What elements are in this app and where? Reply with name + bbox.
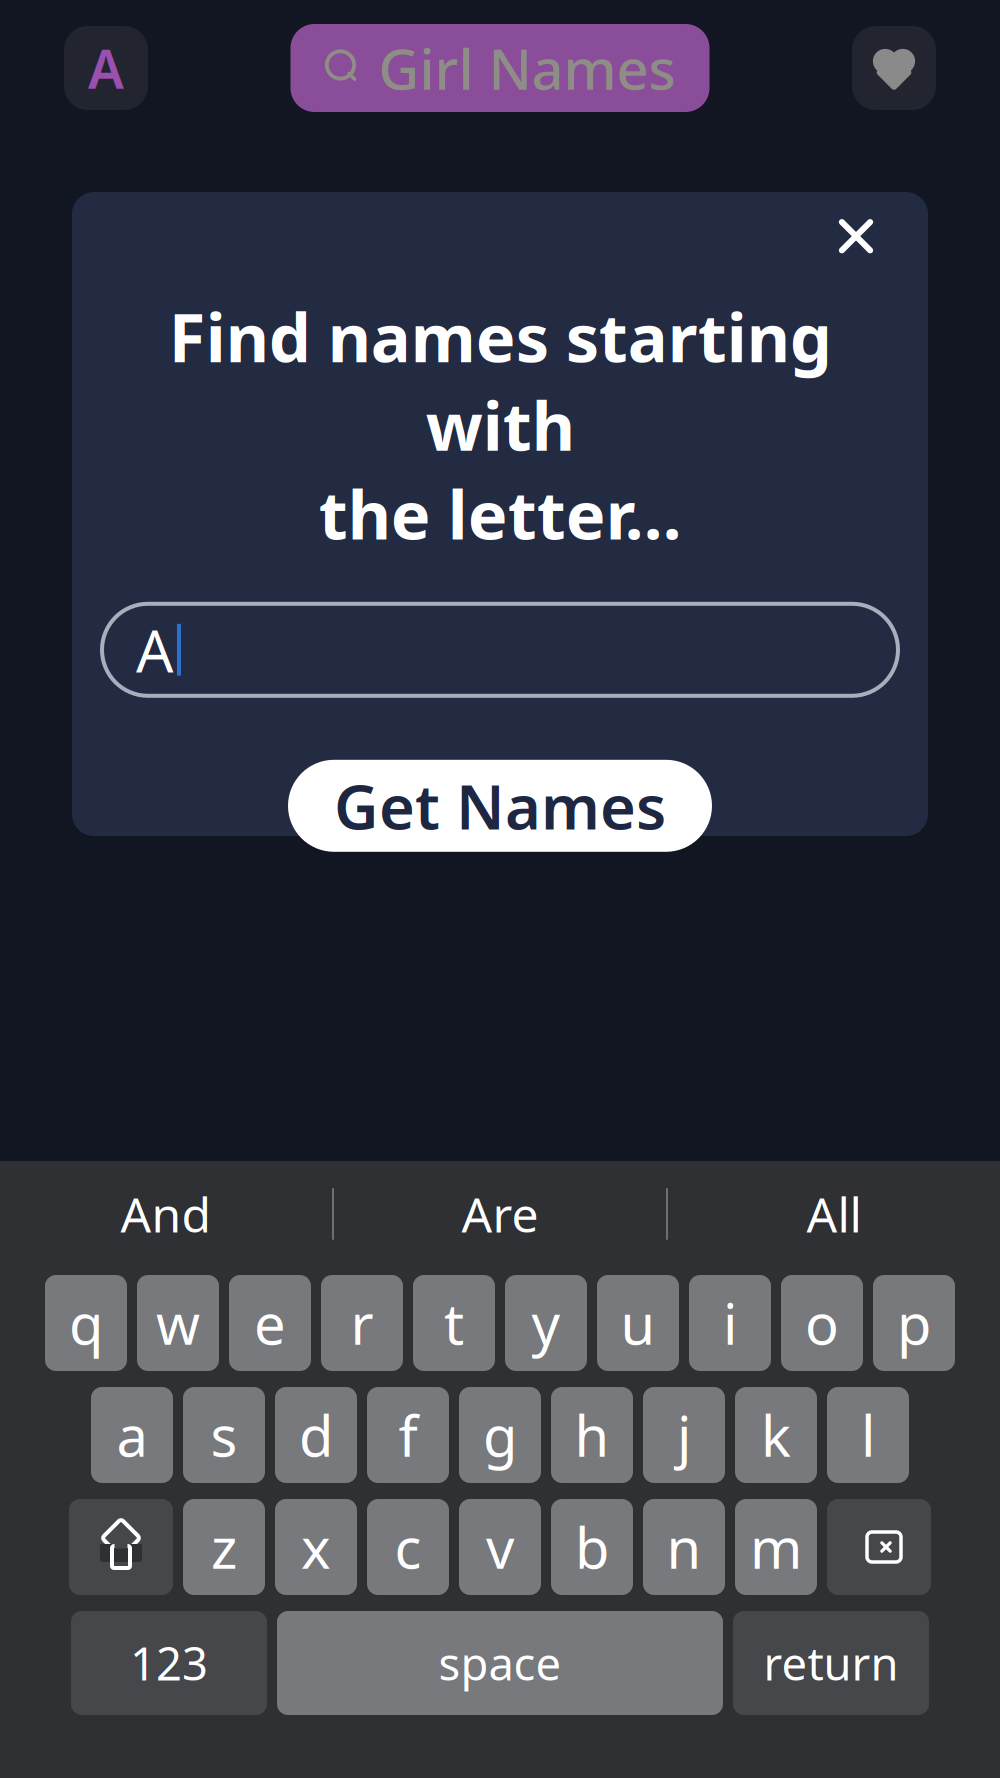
staticText: A: [136, 611, 173, 689]
staticText: o: [805, 1286, 839, 1360]
button[interactable]: b: [551, 1499, 633, 1595]
staticText: And: [120, 1182, 211, 1246]
button[interactable]: z: [183, 1499, 265, 1595]
staticText: y: [531, 1286, 560, 1360]
staticText: l: [861, 1398, 875, 1472]
button[interactable]: p: [873, 1275, 955, 1371]
button[interactable]: j: [643, 1387, 725, 1483]
button[interactable]: m: [735, 1499, 817, 1595]
button[interactable]: And: [0, 1167, 332, 1261]
button[interactable]: n: [643, 1499, 725, 1595]
staticText: Get Names: [334, 765, 666, 846]
button[interactable]: u: [597, 1275, 679, 1371]
button[interactable]: y: [505, 1275, 587, 1371]
button[interactable]: t: [413, 1275, 495, 1371]
staticText: All: [806, 1182, 861, 1246]
button[interactable]: w: [137, 1275, 219, 1371]
button[interactable]: d: [275, 1387, 357, 1483]
staticText: A: [88, 33, 124, 103]
button[interactable]: r: [321, 1275, 403, 1371]
staticText: r: [350, 1286, 373, 1360]
staticText: return: [763, 1633, 898, 1693]
button[interactable]: All: [668, 1167, 1000, 1261]
staticText: a: [116, 1398, 147, 1472]
button[interactable]: s: [183, 1387, 265, 1483]
button[interactable]: Are: [334, 1167, 666, 1261]
button[interactable]: x: [275, 1499, 357, 1595]
button[interactable]: i: [689, 1275, 771, 1371]
button[interactable]: Delete: [827, 1499, 931, 1595]
button[interactable]: l: [827, 1387, 909, 1483]
staticText: j: [677, 1398, 691, 1472]
button[interactable]: g: [459, 1387, 541, 1483]
button[interactable]: Favorites: [852, 26, 936, 110]
button[interactable]: o: [781, 1275, 863, 1371]
button[interactable]: Search Girl Names: [290, 24, 709, 112]
button[interactable]: space: [277, 1611, 723, 1715]
staticText: z: [211, 1510, 237, 1584]
staticText: q: [69, 1286, 103, 1360]
button[interactable]: k: [735, 1387, 817, 1483]
staticText: k: [761, 1398, 791, 1472]
staticText: space: [438, 1633, 561, 1693]
button[interactable]: h: [551, 1387, 633, 1483]
staticText: p: [897, 1286, 931, 1360]
button[interactable]: a: [91, 1387, 173, 1483]
staticText: x: [301, 1510, 331, 1584]
staticText: b: [575, 1510, 609, 1584]
staticText: c: [394, 1510, 421, 1584]
staticText: m: [750, 1510, 802, 1584]
staticText: v: [486, 1510, 514, 1584]
staticText: h: [574, 1398, 609, 1472]
button[interactable]: Get Names: [288, 760, 712, 852]
button[interactable]: 123: [71, 1611, 267, 1715]
button[interactable]: q: [45, 1275, 127, 1371]
staticText: 123: [130, 1633, 208, 1693]
staticText: i: [723, 1286, 737, 1360]
staticText: f: [398, 1398, 417, 1472]
staticText: n: [666, 1510, 701, 1584]
button[interactable]: Close: [822, 202, 890, 270]
button[interactable]: e: [229, 1275, 311, 1371]
staticText: g: [483, 1398, 517, 1472]
staticText: t: [444, 1286, 464, 1360]
button[interactable]: v: [459, 1499, 541, 1595]
staticText: Girl Names: [378, 31, 675, 105]
button[interactable]: Letter A: [64, 26, 148, 110]
staticText: s: [210, 1398, 237, 1472]
button[interactable]: Shift: [69, 1499, 173, 1595]
staticText: e: [254, 1286, 286, 1360]
button[interactable]: return: [733, 1611, 929, 1715]
staticText: Are: [461, 1182, 538, 1246]
button[interactable]: f: [367, 1387, 449, 1483]
staticText: d: [299, 1398, 333, 1472]
button[interactable]: c: [367, 1499, 449, 1595]
staticText: w: [156, 1286, 200, 1360]
staticText: u: [620, 1286, 655, 1360]
staticText: Find names starting with the letter...: [168, 292, 831, 558]
